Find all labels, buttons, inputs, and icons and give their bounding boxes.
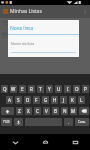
- button[interactable]: B: [52, 107, 59, 115]
- staticText: K: [71, 97, 74, 103]
- staticText: Minhas Listas: [10, 8, 42, 15]
- staticText: Z: [18, 108, 21, 114]
- button[interactable]: F: [33, 96, 40, 104]
- staticText: T: [39, 86, 42, 92]
- staticText: Y: [48, 86, 51, 92]
- staticText: N: [63, 108, 67, 114]
- button[interactable]: Z: [16, 107, 23, 115]
- staticText: C: [36, 108, 39, 114]
- staticText: U: [57, 86, 61, 92]
- button[interactable]: Padaria: [0, 18, 90, 30]
- button[interactable]: U: [55, 85, 62, 93]
- staticText: V: [45, 108, 48, 114]
- staticText: F: [35, 97, 38, 103]
- button[interactable]: Minhas Listas: [0, 5, 90, 18]
- staticText: S: [17, 97, 20, 103]
- staticText: B: [54, 108, 57, 114]
- staticText: Q: [3, 86, 7, 92]
- button[interactable]: T: [37, 85, 44, 93]
- button[interactable]: A: [6, 96, 13, 104]
- staticText: .: [68, 120, 70, 125]
- button[interactable]: Shift: [1, 107, 14, 115]
- button[interactable]: J: [60, 96, 67, 104]
- staticText: H: [53, 97, 57, 103]
- button[interactable]: Home: [30, 134, 60, 150]
- button[interactable]: S: [15, 96, 22, 104]
- button[interactable]: X: [25, 107, 32, 115]
- staticText: Padaria: [2, 19, 17, 25]
- staticText: W: [11, 86, 16, 92]
- button[interactable]: Y: [46, 85, 53, 93]
- staticText: X: [27, 108, 30, 114]
- button[interactable]: Recent apps: [60, 134, 90, 150]
- button[interactable]: R: [28, 85, 35, 93]
- button[interactable]: Q: [1, 85, 8, 93]
- button[interactable]: O: [73, 85, 80, 93]
- button[interactable]: M: [70, 107, 77, 115]
- button[interactable]: Backspace: [79, 107, 89, 115]
- staticText: M: [71, 108, 76, 114]
- staticText: L: [80, 97, 83, 103]
- staticText: A: [8, 97, 11, 103]
- button[interactable]: P: [82, 85, 89, 93]
- staticText: Nome da lista: [11, 41, 35, 46]
- button[interactable]: N: [61, 107, 68, 115]
- button[interactable]: More options: [80, 7, 90, 17]
- button[interactable]: Conc.: [75, 118, 89, 126]
- staticText: 12 itens: [2, 35, 14, 39]
- button[interactable]: K: [69, 96, 76, 104]
- staticText: 4 itens: [2, 23, 12, 27]
- staticText: J: [63, 97, 65, 103]
- button[interactable]: C: [34, 107, 41, 115]
- button[interactable]: Mercado: [0, 30, 90, 42]
- button[interactable]: D: [24, 96, 31, 104]
- button[interactable]: V: [43, 107, 50, 115]
- staticText: O: [75, 86, 79, 92]
- button[interactable]: .: [64, 118, 73, 126]
- staticText: E: [21, 86, 24, 92]
- staticText: G: [44, 97, 48, 103]
- staticText: Nova lista: [10, 25, 33, 32]
- button[interactable]: L: [78, 96, 85, 104]
- button[interactable]: Voice input: [14, 118, 23, 126]
- staticText: P: [84, 86, 87, 92]
- button[interactable]: ?123: [1, 118, 12, 126]
- staticText: ?123: [3, 120, 10, 124]
- button[interactable]: I: [64, 85, 71, 93]
- staticText: I: [67, 86, 69, 92]
- button[interactable]: W: [10, 85, 17, 93]
- button[interactable]: E: [19, 85, 26, 93]
- staticText: Mercado: [2, 31, 20, 37]
- staticText: D: [26, 97, 30, 103]
- button[interactable]: G: [42, 96, 49, 104]
- staticText: Conc.: [78, 120, 86, 124]
- button[interactable]: Hide keyboard: [0, 134, 30, 150]
- button[interactable]: H: [51, 96, 58, 104]
- staticText: R: [30, 86, 33, 92]
